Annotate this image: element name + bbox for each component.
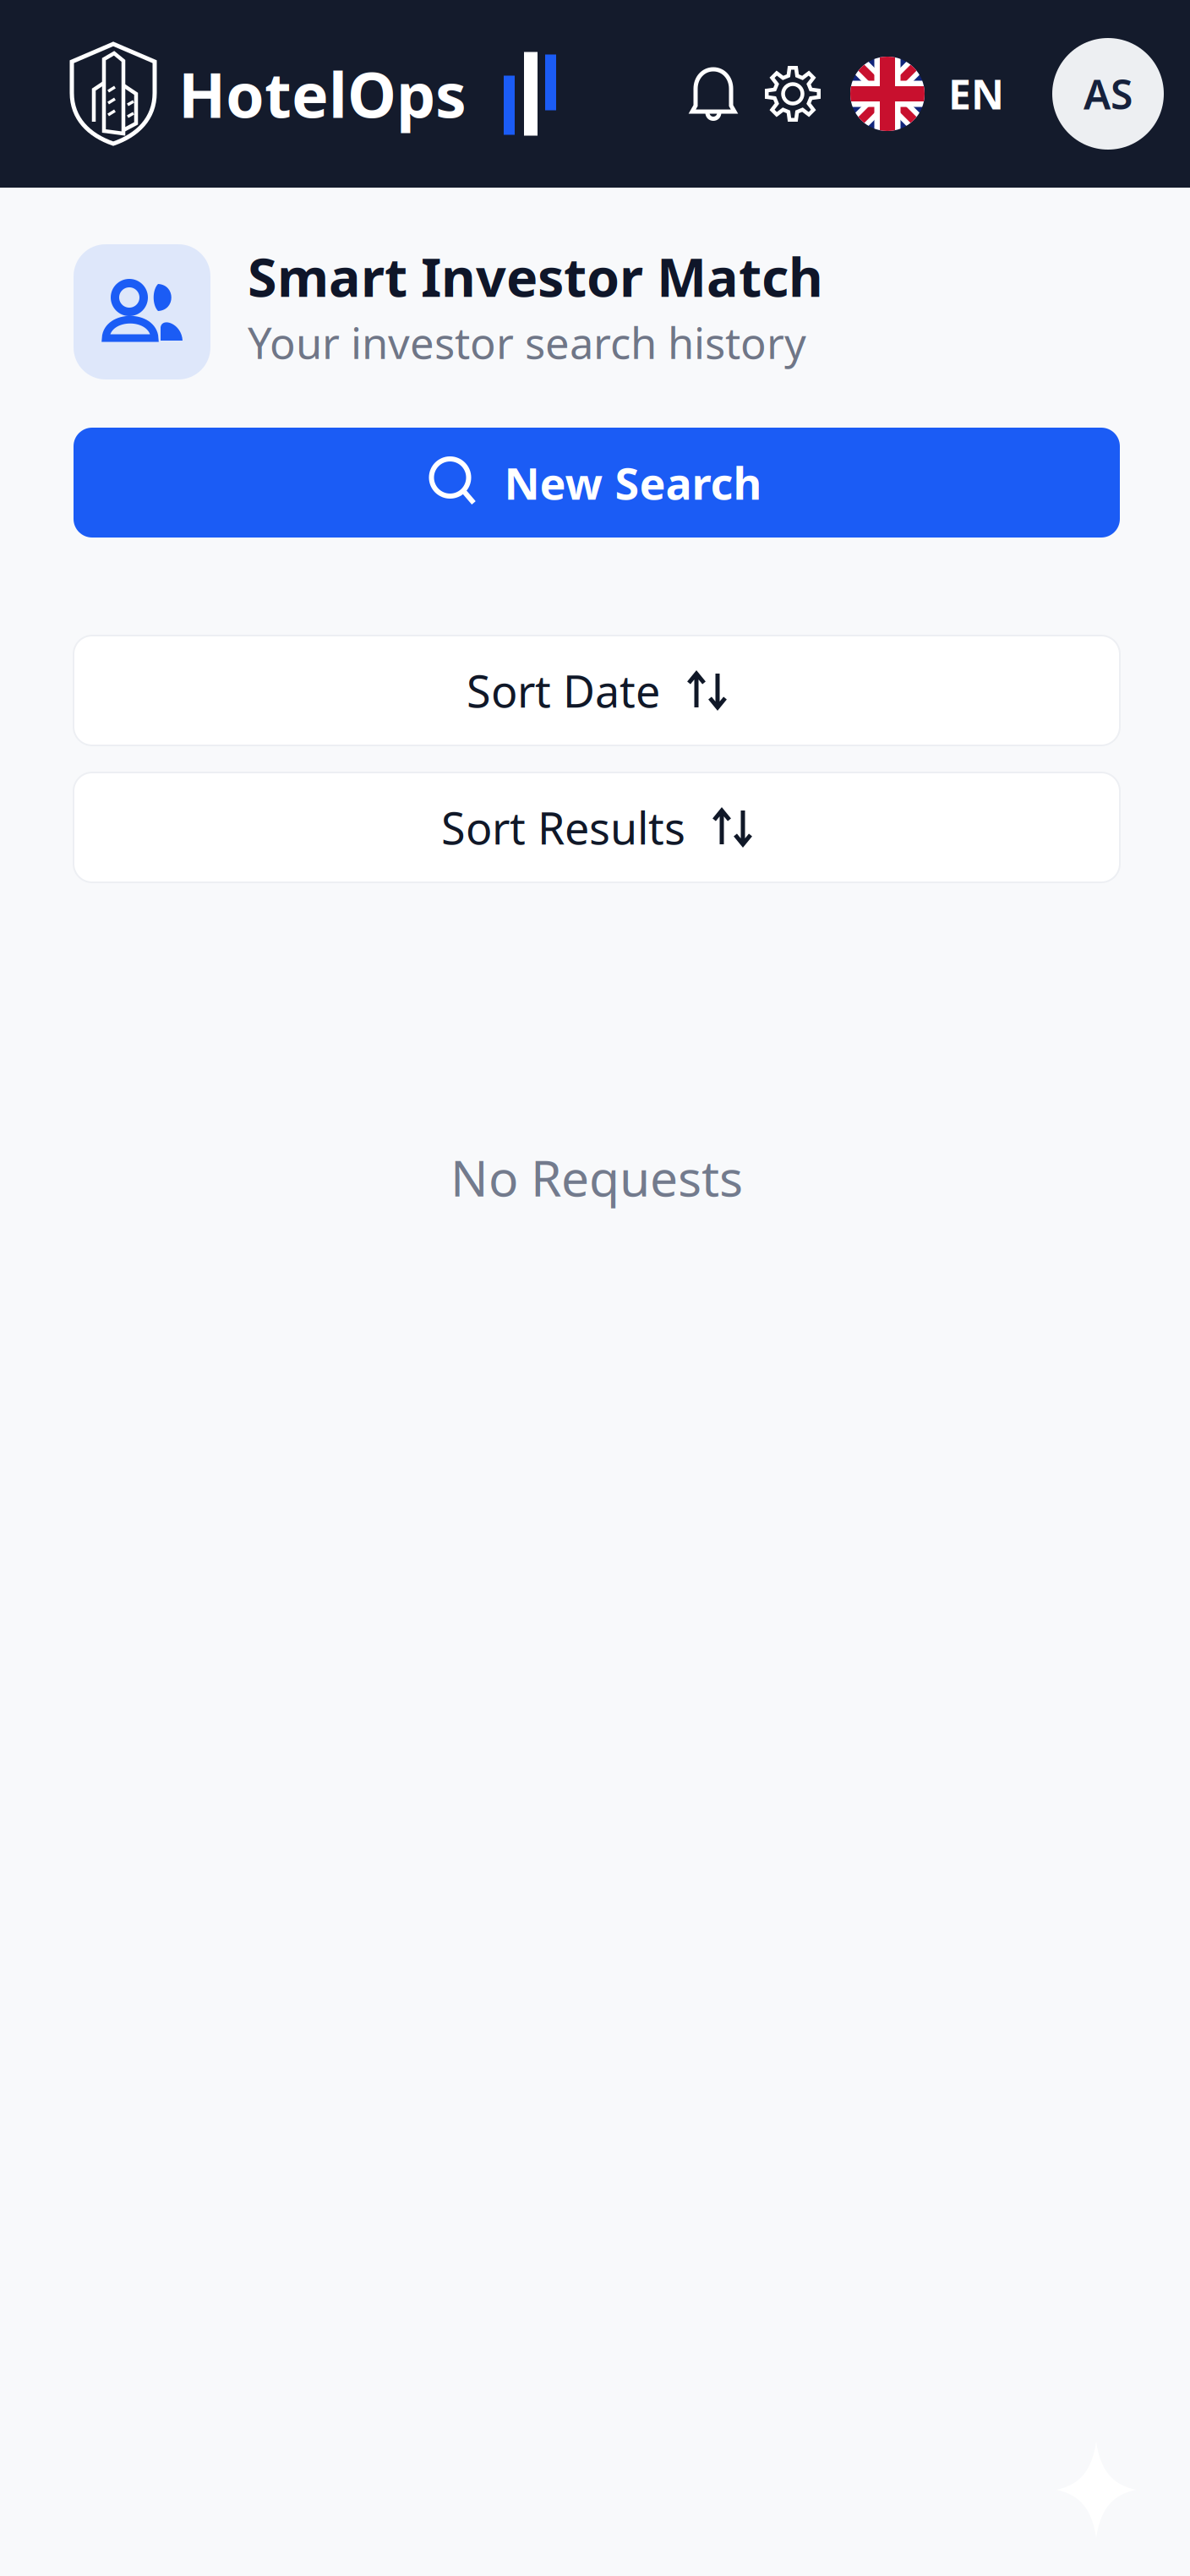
button[interactable]: Sort Date: [74, 636, 1120, 745]
button[interactable]: Notifications: [691, 65, 764, 123]
button[interactable]: Sort Results: [74, 772, 1120, 882]
button[interactable]: HotelOps home: [68, 41, 556, 147]
staticText: No Requests: [450, 1144, 743, 1210]
button[interactable]: Settings: [764, 65, 850, 123]
button[interactable]: Account: [1052, 38, 1164, 150]
staticText: Your investor search history: [248, 314, 806, 371]
staticText: HotelOps: [178, 53, 467, 135]
button[interactable]: New Search: [74, 428, 1120, 538]
staticText: AS: [1084, 67, 1133, 121]
staticText: Sort Results: [441, 798, 685, 857]
staticText: New Search: [504, 453, 762, 512]
staticText: Sort Date: [467, 661, 660, 720]
staticText: EN: [948, 67, 1004, 121]
button[interactable]: EN: [850, 57, 1052, 131]
staticText: Smart Investor Match: [248, 241, 823, 311]
